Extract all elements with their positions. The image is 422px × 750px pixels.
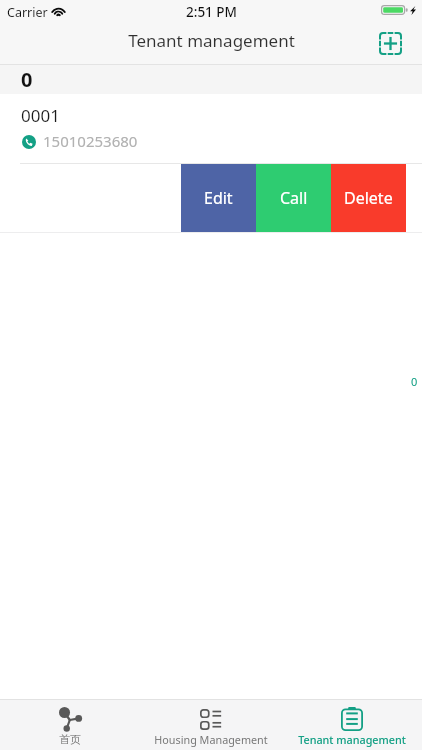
staticText: Delete [344,187,393,209]
button[interactable]: Tenant management [281,700,422,750]
staticText: Call [280,187,308,209]
staticText: Tenant management [128,29,295,52]
button[interactable]: Housing Management [140,700,281,750]
staticText: 2:51 PM [186,3,237,21]
button[interactable]: Call [256,164,331,232]
staticText: Carrier [7,4,48,21]
staticText: Edit [204,187,233,209]
staticText: 0001 [21,104,60,127]
staticText: 首页 [59,733,81,747]
staticText: Tenant management [298,732,406,747]
staticText: 0 [411,374,418,389]
button[interactable]: Edit [181,164,256,232]
staticText: 0 [21,66,33,93]
staticText: 15010253680 [43,131,138,151]
button[interactable]: 首页 [0,700,140,750]
button[interactable]: Delete [331,164,406,232]
button[interactable]: 0001 [0,94,422,163]
button[interactable]: Add tenant [374,27,406,59]
staticText: Housing Management [154,732,268,747]
